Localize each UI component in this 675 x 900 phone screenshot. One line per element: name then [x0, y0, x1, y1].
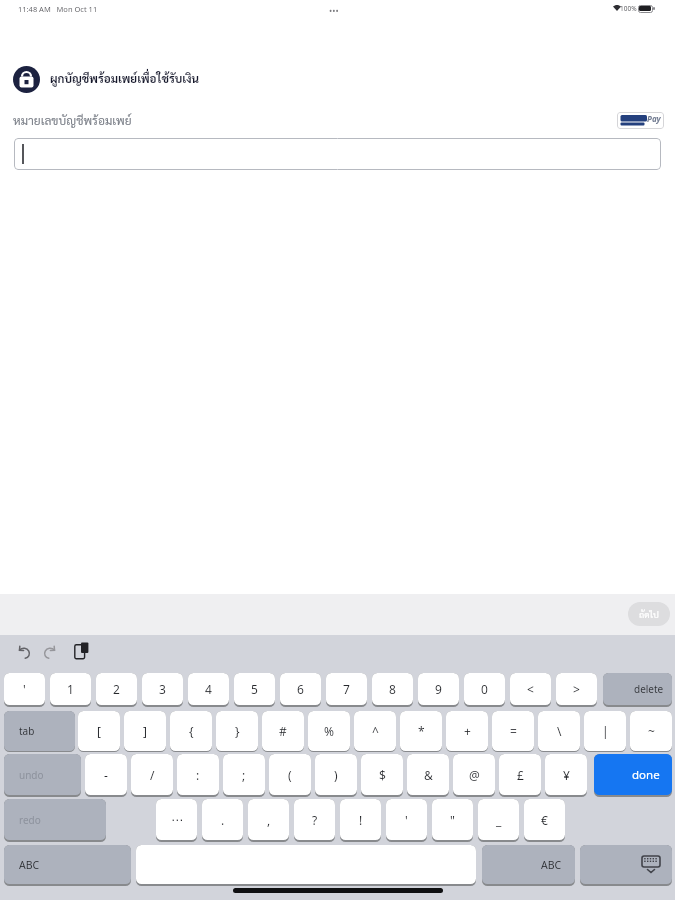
staticText: ,	[267, 812, 271, 828]
button[interactable]: 8	[372, 673, 413, 705]
button[interactable]: /	[131, 754, 173, 795]
staticText: #	[279, 723, 287, 739]
button[interactable]: €	[524, 799, 565, 840]
staticText: ถัดไป	[639, 608, 659, 620]
button[interactable]	[136, 845, 476, 884]
button[interactable]: done	[594, 754, 672, 795]
staticText: ;	[242, 767, 246, 783]
button[interactable]: 0	[464, 673, 505, 705]
staticText: undo	[19, 768, 44, 782]
staticText: ABC	[19, 858, 40, 872]
button[interactable]	[43, 646, 57, 659]
staticText: "	[450, 812, 455, 828]
button[interactable]: |	[584, 711, 626, 751]
staticText: !	[359, 812, 363, 828]
button[interactable]: ABC	[482, 845, 575, 884]
staticText: ^	[372, 723, 379, 739]
button[interactable]: 9	[418, 673, 459, 705]
button[interactable]: :	[177, 754, 219, 795]
staticText: 0	[481, 681, 488, 697]
button[interactable]: <	[510, 673, 551, 705]
staticText: [	[97, 723, 101, 739]
staticText: $	[379, 767, 386, 783]
staticText: หมายเลขบัญชีพร้อมเพย์	[13, 112, 132, 128]
staticText: .	[221, 812, 225, 828]
staticText: =	[510, 723, 517, 739]
staticText: delete	[634, 682, 664, 696]
staticText: '	[405, 812, 408, 828]
button[interactable]: ABC	[4, 845, 131, 884]
button[interactable]: delete	[603, 673, 672, 705]
staticText: 4	[205, 681, 212, 697]
button[interactable]: undo	[4, 754, 81, 795]
staticText: redo	[19, 813, 41, 827]
staticText: 6	[297, 681, 304, 697]
button[interactable]: '	[386, 799, 427, 840]
button[interactable]: (	[269, 754, 311, 795]
button[interactable]: \	[538, 711, 580, 751]
staticText: &	[424, 767, 433, 783]
button[interactable]: £	[499, 754, 541, 795]
staticText: *	[418, 723, 425, 739]
staticText: /	[150, 767, 155, 783]
button[interactable]: ,	[248, 799, 289, 840]
button[interactable]: _	[478, 799, 519, 840]
button[interactable]: ถัดไป	[628, 602, 670, 626]
button[interactable]: -	[85, 754, 127, 795]
button[interactable]: ¥	[545, 754, 587, 795]
staticText: |	[602, 723, 609, 739]
button[interactable]: ?	[294, 799, 335, 840]
staticText: :	[196, 767, 200, 783]
button[interactable]: *	[400, 711, 442, 751]
button[interactable]: '	[4, 673, 45, 705]
button[interactable]: #	[262, 711, 304, 751]
staticText: 2	[113, 681, 120, 697]
button[interactable]: =	[492, 711, 534, 751]
staticText: _	[496, 812, 502, 828]
button[interactable]: 6	[280, 673, 321, 705]
button[interactable]: $	[361, 754, 403, 795]
button[interactable]: 4	[188, 673, 229, 705]
staticText: ~	[648, 723, 655, 739]
button[interactable]: redo	[4, 799, 106, 840]
staticText: 1	[67, 681, 74, 697]
button[interactable]	[14, 138, 661, 170]
button[interactable]: 7	[326, 673, 367, 705]
button[interactable]: ;	[223, 754, 265, 795]
button[interactable]: )	[315, 754, 357, 795]
button[interactable]: ]	[124, 711, 166, 751]
button[interactable]: 5	[234, 673, 275, 705]
button[interactable]: 1	[50, 673, 91, 705]
button[interactable]: {	[170, 711, 212, 751]
staticText: ]	[143, 723, 147, 739]
staticText: +	[464, 723, 471, 739]
button[interactable]: ⋯	[156, 799, 197, 840]
button[interactable]: %	[308, 711, 350, 751]
button[interactable]	[17, 646, 31, 659]
button[interactable]: .	[202, 799, 243, 840]
button[interactable]: tab	[4, 711, 75, 751]
button[interactable]: "	[432, 799, 473, 840]
staticText: 11:48 AM Mon Oct 11	[18, 4, 98, 14]
staticText: )	[334, 767, 338, 783]
button[interactable]	[74, 642, 89, 660]
button[interactable]: 2	[96, 673, 137, 705]
button[interactable]: [	[78, 711, 120, 751]
staticText: Pay	[647, 113, 661, 124]
button[interactable]: ^	[354, 711, 396, 751]
staticText: €	[541, 812, 548, 828]
button[interactable]: 3	[142, 673, 183, 705]
button[interactable]: @	[453, 754, 495, 795]
button[interactable]: +	[446, 711, 488, 751]
button[interactable]: !	[340, 799, 381, 840]
staticText: ผูกบัญชีพร้อมเพย์เพื่อใช้รับเงิน	[50, 71, 200, 86]
button[interactable]: ~	[630, 711, 672, 751]
staticText: <	[527, 681, 534, 697]
button[interactable]: &	[407, 754, 449, 795]
button[interactable]	[580, 845, 672, 884]
staticText: '	[23, 681, 26, 697]
button[interactable]: }	[216, 711, 258, 751]
staticText: £	[517, 767, 524, 783]
staticText: 100%	[620, 4, 637, 13]
button[interactable]: >	[556, 673, 597, 705]
